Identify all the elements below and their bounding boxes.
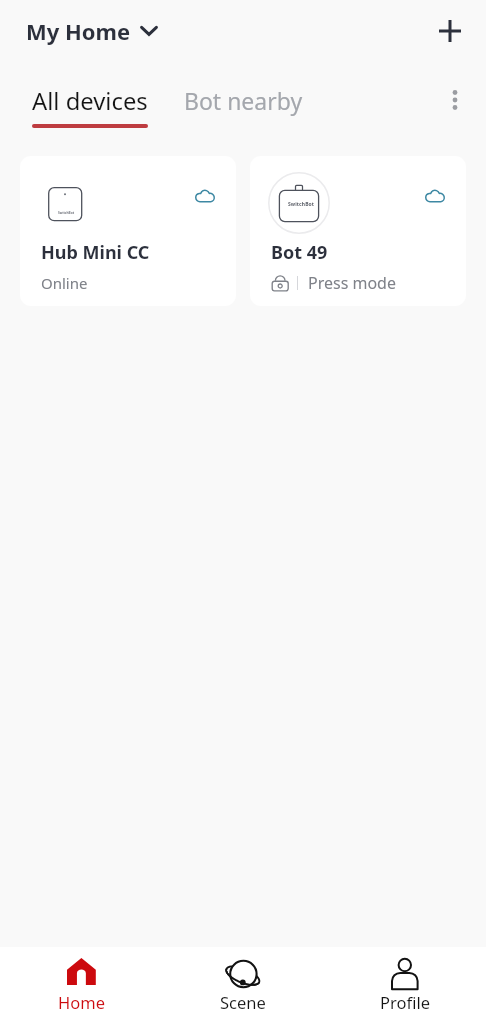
staticText: Press mode [308, 272, 396, 294]
button[interactable]: SwitchBot [20, 156, 236, 306]
button[interactable]: SwitchBot [250, 156, 466, 306]
button[interactable]: Add device [430, 11, 470, 51]
staticText: Home [58, 991, 105, 1013]
button[interactable]: My Home [26, 16, 158, 46]
button[interactable]: Profile [324, 947, 486, 1023]
staticText: My Home [26, 16, 131, 46]
staticText: Online [41, 273, 88, 293]
staticText: SwitchBot [288, 201, 315, 208]
staticText: All devices [32, 85, 148, 117]
button[interactable]: Bot nearby [184, 85, 303, 116]
staticText: Bot 49 [271, 240, 328, 265]
staticText: Hub Mini CC [41, 240, 150, 265]
staticText: Bot nearby [184, 85, 303, 116]
staticText: Profile [380, 991, 430, 1013]
staticText: SwitchBot [58, 211, 75, 215]
button[interactable]: Scene [162, 947, 324, 1023]
button[interactable]: More options [438, 83, 472, 117]
button[interactable]: Home [0, 947, 162, 1023]
button[interactable]: All devices [32, 85, 148, 128]
staticText: Scene [220, 991, 266, 1013]
